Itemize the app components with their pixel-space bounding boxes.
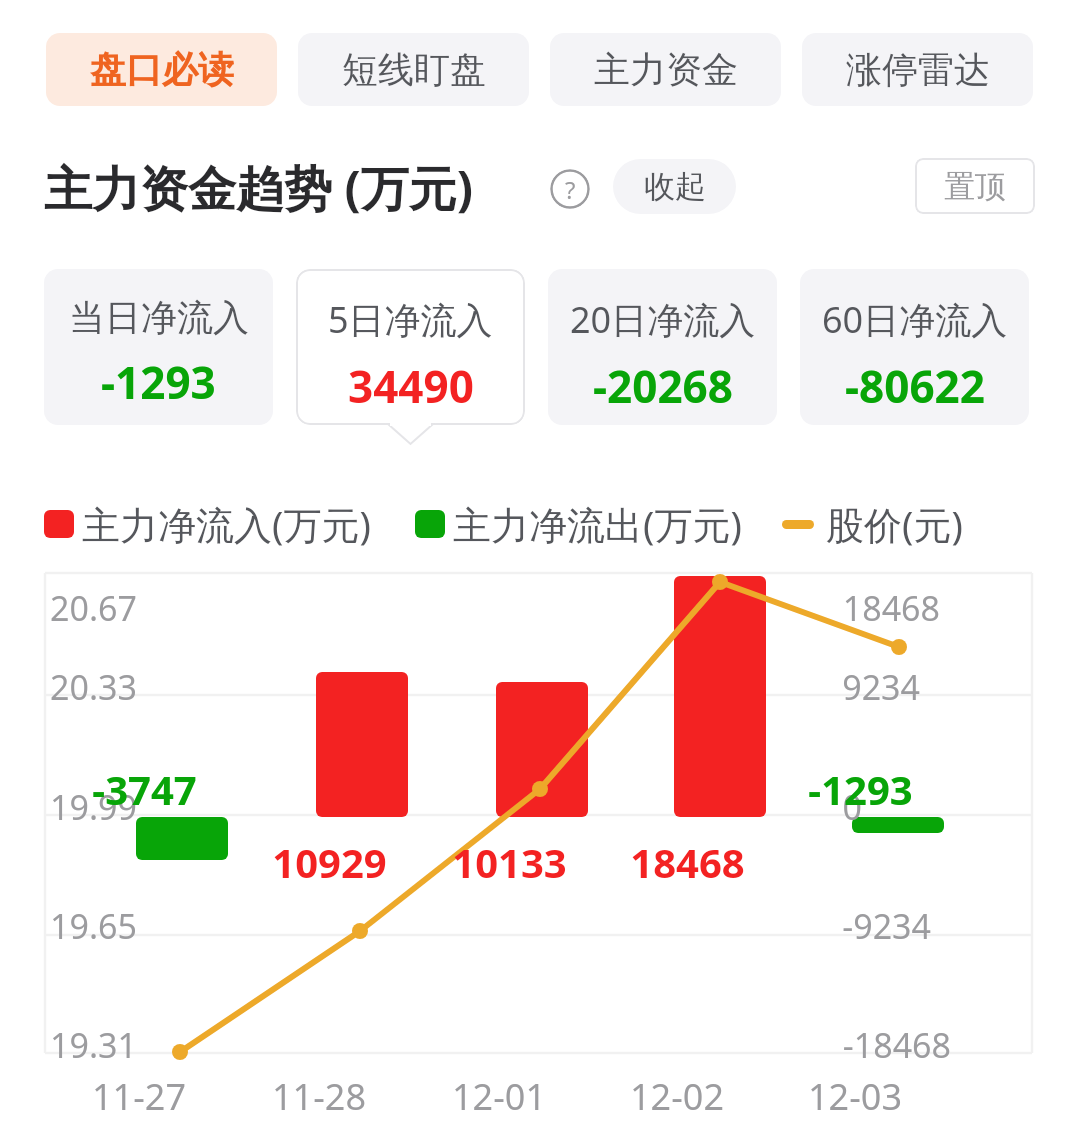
staticText: 12-02 bbox=[630, 1072, 724, 1121]
staticText: 20.67 bbox=[50, 585, 137, 631]
staticText: 主力资金 bbox=[594, 47, 738, 92]
staticText: 18468 bbox=[630, 835, 745, 889]
staticText: 0 bbox=[842, 784, 862, 830]
staticText: -9234 bbox=[842, 903, 931, 949]
staticText: ? bbox=[565, 173, 576, 206]
staticText: 20.33 bbox=[50, 664, 137, 710]
staticText: 11-28 bbox=[272, 1072, 366, 1121]
staticText: 股价(元) bbox=[826, 498, 963, 550]
staticText: -3747 bbox=[92, 762, 197, 816]
staticText: 10929 bbox=[272, 835, 387, 889]
staticText: 34490 bbox=[348, 356, 474, 416]
staticText: 盘口必读 bbox=[90, 47, 234, 92]
staticText: 18468 bbox=[842, 585, 940, 631]
button[interactable]: 当日净流入 bbox=[44, 269, 273, 425]
button[interactable]: 主力资金 bbox=[550, 33, 781, 106]
staticText: 11-27 bbox=[92, 1072, 186, 1121]
staticText: 主力净流入(万元) bbox=[82, 498, 371, 550]
staticText: 19.65 bbox=[50, 903, 137, 949]
button[interactable]: 置顶 bbox=[915, 158, 1035, 214]
staticText: 10133 bbox=[452, 835, 567, 889]
staticText: 60日净流入 bbox=[822, 295, 1008, 344]
staticText: 20日净流入 bbox=[570, 295, 756, 344]
staticText: -20268 bbox=[593, 356, 733, 416]
staticText: 短线盯盘 bbox=[342, 47, 486, 92]
button[interactable]: 60日净流入 bbox=[800, 269, 1029, 425]
staticText: 当日净流入 bbox=[69, 295, 249, 340]
button[interactable]: 盘口必读 bbox=[46, 33, 277, 106]
staticText: 19.31 bbox=[50, 1022, 137, 1068]
button[interactable]: 收起 bbox=[613, 159, 736, 214]
staticText: 收起 bbox=[644, 167, 706, 206]
staticText: -1293 bbox=[101, 352, 216, 412]
staticText: 涨停雷达 bbox=[846, 47, 990, 92]
staticText: 置顶 bbox=[944, 167, 1006, 206]
button[interactable]: 涨停雷达 bbox=[802, 33, 1033, 106]
button[interactable]: 20日净流入 bbox=[548, 269, 777, 425]
staticText: -18468 bbox=[842, 1022, 951, 1068]
staticText: -80622 bbox=[845, 356, 985, 416]
button[interactable]: 短线盯盘 bbox=[298, 33, 529, 106]
staticText: 5日净流入 bbox=[328, 295, 493, 344]
staticText: 主力资金趋势 (万元) bbox=[44, 155, 474, 221]
button[interactable]: 帮助 bbox=[550, 169, 590, 209]
staticText: 19.99 bbox=[50, 784, 137, 830]
staticText: -1293 bbox=[808, 762, 913, 816]
staticText: 12-01 bbox=[452, 1072, 546, 1121]
staticText: 12-03 bbox=[808, 1072, 902, 1121]
staticText: 9234 bbox=[842, 664, 920, 710]
button[interactable]: 5日净流入 bbox=[296, 269, 525, 425]
staticText: 主力净流出(万元) bbox=[453, 498, 742, 550]
